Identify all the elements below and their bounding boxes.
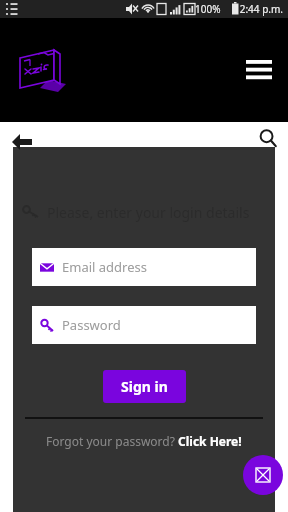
- button[interactable]: Sign in: [103, 370, 186, 403]
- staticText: Email address: [62, 258, 147, 276]
- button[interactable]: Email address: [32, 248, 256, 286]
- button[interactable]: Menu: [242, 55, 276, 85]
- button[interactable]: Loading: [243, 455, 283, 495]
- button[interactable]: Forgot your password? Click Here!: [13, 433, 275, 449]
- staticText: 12:44 p.m.: [234, 2, 284, 16]
- staticText: 100%: [195, 2, 221, 16]
- button[interactable]: Password: [32, 306, 256, 344]
- button[interactable]: Search: [254, 124, 282, 152]
- button[interactable]: Back: [6, 126, 38, 158]
- staticText: Forgot your password? Click Here!: [46, 433, 242, 449]
- staticText: Sign in: [121, 377, 168, 396]
- staticText: Password: [62, 316, 121, 334]
